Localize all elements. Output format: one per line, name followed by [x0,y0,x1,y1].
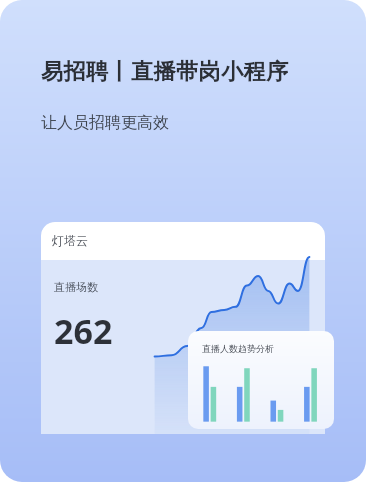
staticText: 易招聘丨直播带岗小程序 [41,58,289,86]
button[interactable]: 直播人数趋势分析 [188,331,334,429]
staticText: 灯塔云 [52,233,88,248]
staticText: 直播人数趋势分析 [202,343,274,354]
staticText: 262 [54,308,113,354]
staticText: 直播场数 [54,280,98,294]
button[interactable]: 灯塔云 [41,222,325,434]
staticText: 让人员招聘更高效 [41,113,169,133]
